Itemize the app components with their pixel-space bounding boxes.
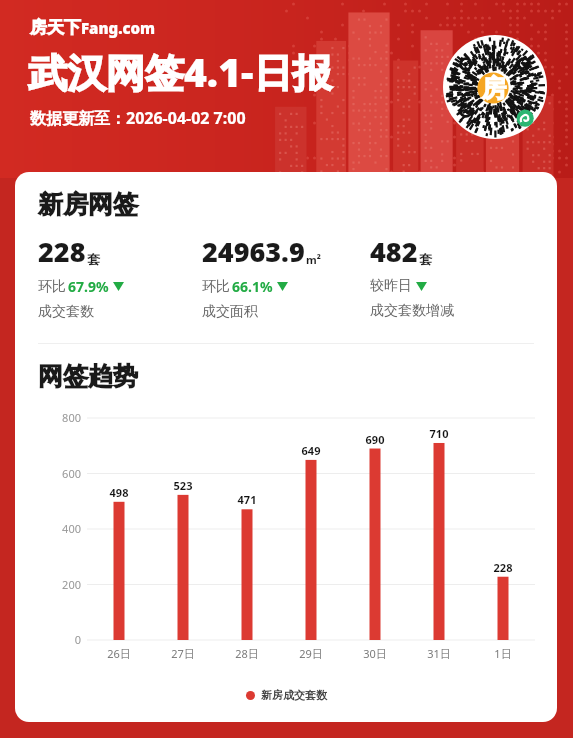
staticText: 30日 [349,646,401,661]
staticText: 房天下 [30,17,81,38]
staticText: Fang.com [81,18,156,38]
staticText: 成交套数 [38,303,94,321]
staticText: 31日 [413,646,465,661]
button[interactable]: 482 [370,233,540,320]
staticText: 较昨日 [370,277,412,295]
staticText: 228 [38,233,86,270]
staticText: 200 [41,577,81,592]
button[interactable]: 228 [38,233,202,321]
staticText: 600 [41,466,81,481]
staticText: 成交套数增减 [370,302,454,320]
staticText: 498 [97,485,141,500]
staticText: 710 [417,426,461,441]
staticText: 环比 [38,278,66,296]
staticText: 28日 [221,646,273,661]
staticText: 649 [289,443,333,458]
staticText: 26日 [93,646,145,661]
staticText: 网签趋势 [38,361,138,392]
staticText: 1日 [477,646,529,661]
staticText: 690 [353,432,397,447]
staticText: 套 [87,251,100,267]
staticText: 武汉网签4.1-日报 [28,45,332,98]
staticText: 套 [419,251,432,267]
staticText: 471 [225,492,269,507]
staticText: 523 [161,478,205,493]
staticText: 成交面积 [202,303,258,321]
staticText: 新房网签 [38,189,138,220]
staticText: 新房成交套数 [261,688,327,702]
button[interactable]: 24963.9 [202,233,370,321]
staticText: 400 [41,521,81,536]
staticText: 482 [370,233,418,270]
staticText: m² [306,252,321,267]
staticText: 29日 [285,646,337,661]
staticText: 66.1% [232,277,273,296]
staticText: 数据更新至：2026-04-02 7:00 [30,107,246,129]
staticText: 房 [481,73,506,104]
staticText: 228 [481,560,525,575]
staticText: 24963.9 [202,233,305,270]
staticText: 67.9% [68,277,109,296]
staticText: 27日 [157,646,209,661]
button[interactable]: 扫码进入小程序 [443,35,547,139]
staticText: 环比 [202,278,230,296]
staticText: 800 [41,410,81,425]
staticText: 0 [41,632,81,647]
button[interactable]: 房天下 [30,17,156,38]
